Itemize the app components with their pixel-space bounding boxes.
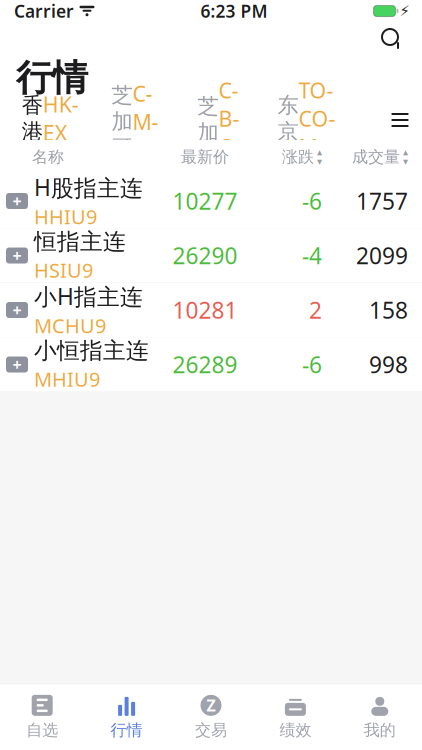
- staticText: 158: [369, 295, 408, 325]
- staticText: +: [12, 299, 21, 321]
- button[interactable]: Add to watchlist: [6, 247, 28, 263]
- staticText: +: [12, 190, 21, 212]
- staticText: Carrier: [14, 0, 74, 22]
- staticText: 1757: [356, 186, 408, 216]
- staticText: 东京: [277, 92, 298, 145]
- button[interactable]: +: [0, 283, 422, 337]
- staticText: 芝加哥: [197, 93, 218, 172]
- button[interactable]: Add to watchlist: [6, 356, 28, 372]
- staticText: H股指主连: [34, 172, 143, 202]
- staticText: TOCOM: [298, 76, 335, 161]
- button[interactable]: +: [0, 174, 422, 228]
- button[interactable]: 东京: [275, 70, 338, 170]
- button[interactable]: 我的: [338, 688, 422, 746]
- staticText: 26290: [172, 240, 237, 270]
- staticText: ▲: [403, 148, 408, 156]
- staticText: ▼: [317, 158, 322, 166]
- staticText: -6: [302, 349, 322, 379]
- staticText: MCHU9: [34, 312, 106, 339]
- staticText: 我的: [364, 720, 396, 740]
- staticText: 998: [369, 349, 408, 379]
- staticText: MHIU9: [34, 366, 100, 392]
- staticText: 名称: [32, 147, 64, 167]
- button[interactable]: Add to watchlist: [6, 193, 28, 209]
- staticText: 6:23 PM: [200, 0, 267, 22]
- staticText: HSIU9: [34, 257, 93, 283]
- button[interactable]: Z: [169, 688, 253, 746]
- button[interactable]: Search: [370, 22, 414, 56]
- staticText: 香港: [22, 92, 43, 145]
- staticText: +: [12, 245, 21, 266]
- staticText: HKEX: [43, 90, 79, 147]
- staticText: 小恒指主连: [34, 337, 149, 365]
- staticText: 2099: [356, 240, 408, 270]
- staticText: 恒指主连: [34, 228, 126, 256]
- staticText: 绩效: [279, 720, 311, 740]
- staticText: 10281: [172, 295, 237, 325]
- staticText: 涨跌: [282, 147, 314, 167]
- button[interactable]: 行情: [84, 688, 169, 746]
- staticText: -4: [302, 240, 322, 270]
- staticText: CME: [133, 79, 159, 164]
- staticText: ⚡︎: [399, 3, 409, 19]
- staticText: Z: [206, 695, 215, 716]
- staticText: 小H指主连: [34, 281, 143, 311]
- staticText: +: [12, 354, 21, 375]
- staticText: 成交量: [352, 147, 400, 167]
- staticText: 2: [309, 295, 322, 325]
- button[interactable]: 自选: [0, 688, 84, 746]
- staticText: CBOT: [218, 76, 242, 189]
- button[interactable]: Add to watchlist: [6, 302, 28, 318]
- staticText: 芝加哥: [112, 82, 133, 161]
- button[interactable]: 绩效: [253, 688, 338, 746]
- staticText: -6: [302, 186, 322, 216]
- staticText: 最新价: [181, 147, 229, 167]
- staticText: 行情: [111, 720, 143, 740]
- button[interactable]: 香港: [16, 84, 84, 156]
- button[interactable]: More exchanges: [380, 100, 420, 140]
- staticText: 自选: [26, 720, 58, 740]
- button[interactable]: 芝加哥: [106, 73, 169, 167]
- staticText: 行情: [16, 56, 88, 100]
- staticText: 26289: [172, 349, 237, 379]
- staticText: ▲: [317, 148, 322, 156]
- button[interactable]: +: [0, 228, 422, 283]
- button[interactable]: +: [0, 337, 422, 392]
- staticText: 10277: [172, 186, 237, 216]
- staticText: HHIU9: [34, 203, 97, 230]
- button[interactable]: 芝加哥: [191, 70, 253, 170]
- staticText: 交易: [195, 720, 227, 740]
- staticText: ▼: [403, 158, 408, 166]
